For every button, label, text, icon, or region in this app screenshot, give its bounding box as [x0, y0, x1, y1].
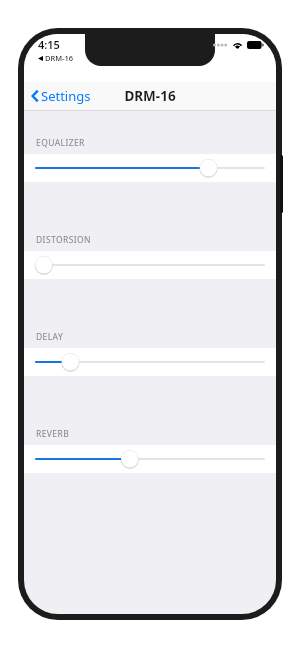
staticText: DRM-16	[45, 53, 74, 63]
button[interactable]: EQUALIZER slider	[24, 154, 276, 182]
staticText: DRM-16	[124, 87, 176, 105]
staticText: Settings	[41, 87, 91, 105]
staticText: REVERB	[36, 428, 70, 440]
button[interactable]: REVERB slider	[24, 445, 276, 473]
button[interactable]: Settings	[24, 85, 97, 107]
staticText: EQUALIZER	[36, 137, 85, 149]
staticText: 4:15	[38, 37, 60, 52]
button[interactable]: DELAY slider	[24, 348, 276, 376]
staticText: DISTORSION	[36, 234, 91, 246]
button[interactable]: DISTORSION slider	[24, 251, 276, 279]
staticText: DELAY	[36, 331, 64, 343]
